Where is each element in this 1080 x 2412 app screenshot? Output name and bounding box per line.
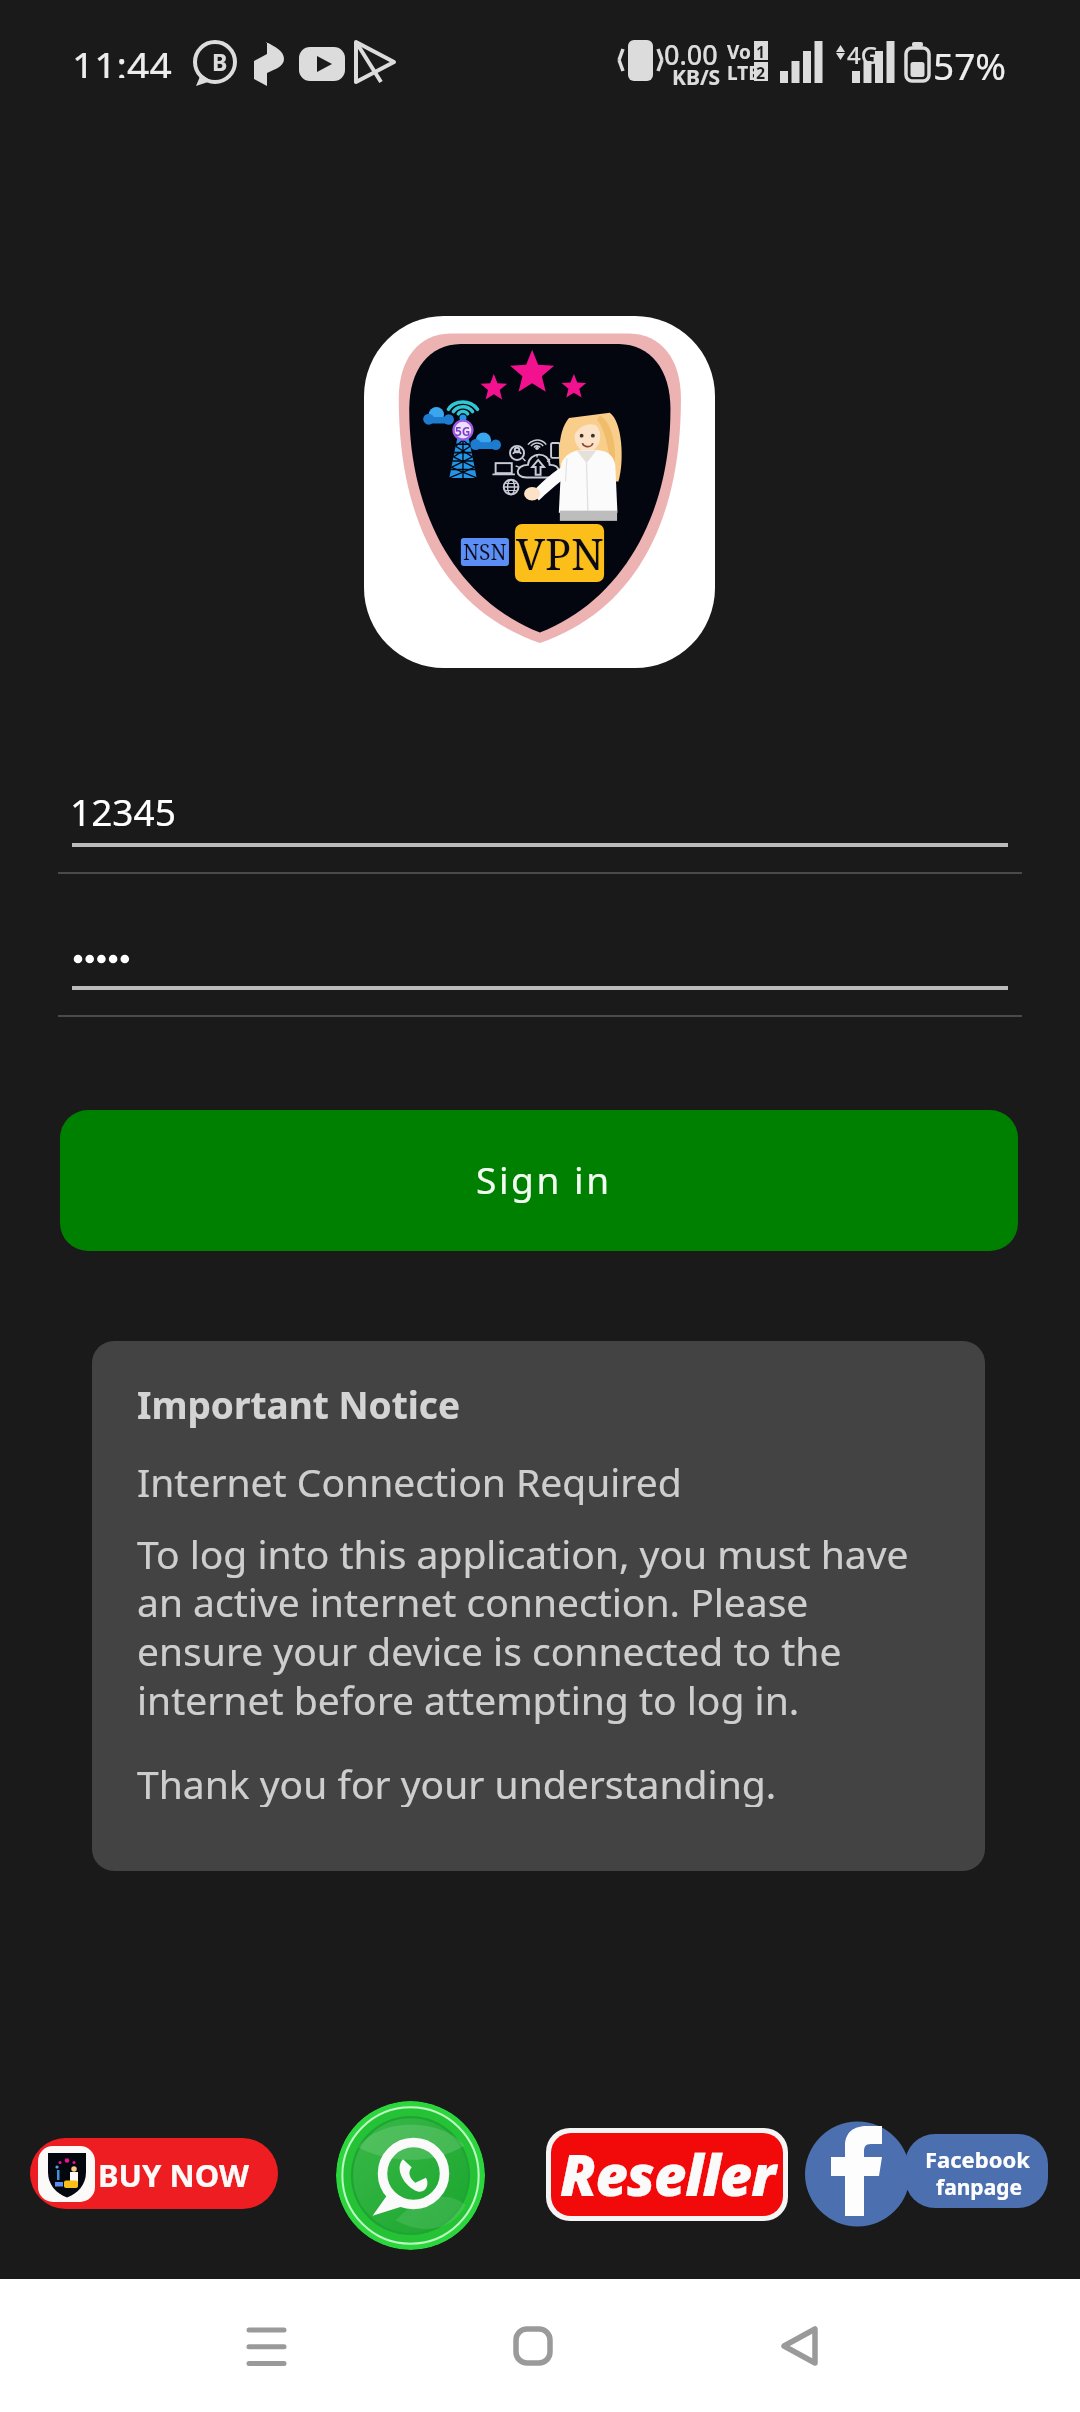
staticText: fanpage xyxy=(936,2173,1023,2202)
staticText: Reseller xyxy=(560,2136,775,2212)
button[interactable]: Facebook fanpage xyxy=(805,2121,1050,2228)
button[interactable]: BUY NOW xyxy=(30,2138,278,2209)
button[interactable]: Back xyxy=(720,2279,880,2412)
staticText: To log into this application, you must h… xyxy=(137,1527,909,1727)
staticText: 11:44 xyxy=(72,38,172,78)
staticText: Facebook xyxy=(925,2144,1030,2174)
staticText: Vo xyxy=(727,39,751,63)
staticText: LTE xyxy=(727,60,759,84)
staticText: 0.00 xyxy=(664,36,718,70)
staticText: KB/S xyxy=(672,63,721,89)
staticText: VPN xyxy=(516,524,604,582)
button[interactable]: Recent apps xyxy=(186,2279,346,2412)
staticText: 1 xyxy=(756,41,766,60)
button[interactable]: WhatsApp xyxy=(336,2101,485,2250)
staticText: 5G xyxy=(455,423,471,439)
staticText: 57% xyxy=(933,40,1007,88)
staticText: 12345 xyxy=(70,786,176,830)
button[interactable]: Home xyxy=(453,2279,613,2412)
button[interactable]: Username xyxy=(72,780,1008,847)
staticText: 2 xyxy=(756,62,766,81)
staticText: NSN xyxy=(463,538,507,566)
button[interactable]: Reseller xyxy=(551,2133,783,2216)
staticText: Thank you for your understanding. xyxy=(137,1757,777,1807)
button[interactable]: Sign in xyxy=(60,1110,1018,1251)
staticText: BUY NOW xyxy=(98,2154,249,2194)
staticText: B xyxy=(212,46,228,76)
staticText: 4G xyxy=(847,38,879,66)
staticText: Internet Connection Required xyxy=(137,1455,682,1505)
button[interactable]: Password xyxy=(72,930,1008,990)
staticText: Sign in xyxy=(476,1154,612,1204)
staticText: Important Notice xyxy=(137,1379,460,1429)
